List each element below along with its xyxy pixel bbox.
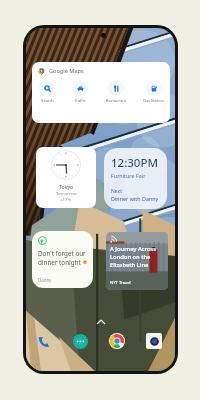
staticText: 12:30PM [111,155,159,171]
staticText: Restaurant [106,98,126,103]
staticText: Tomorrow [56,190,77,196]
button[interactable]: Messages [71,332,89,350]
staticText: Dinner with Danny [111,195,159,202]
staticText: NYT Travel [110,280,131,286]
button[interactable]: A Journey Across London on the Elizabeth… [106,232,168,290]
button[interactable]: Search [38,80,56,103]
button[interactable]: Gas Station [142,80,165,103]
button[interactable]: Google Maps [32,62,170,123]
staticText: dinner tonight [38,258,81,267]
button[interactable]: Phone [35,332,53,350]
staticText: Danny [38,277,52,283]
button[interactable]: Chrome [108,332,126,350]
staticText: Tokyo [59,183,74,190]
staticText: Google Maps [49,67,84,75]
staticText: Next [111,188,122,195]
staticText: +17 h [60,196,72,202]
staticText: Furniture Fair [111,172,146,179]
button[interactable]: Tokyo [36,147,96,208]
button[interactable]: Don't forget our [32,231,93,288]
staticText: Search [41,98,54,103]
staticText: Gas Station [143,98,164,103]
staticText: A Journey Across London on the Elizabeth… [110,245,157,269]
staticText: Traffic [74,98,86,103]
button[interactable]: Restaurant [105,80,127,103]
button[interactable]: Open app drawer [94,318,108,326]
button[interactable]: Camera [145,332,163,350]
button[interactable]: 12:30PM [104,148,167,209]
button[interactable]: Traffic [71,80,89,103]
staticText: Don't forget our [38,249,86,258]
